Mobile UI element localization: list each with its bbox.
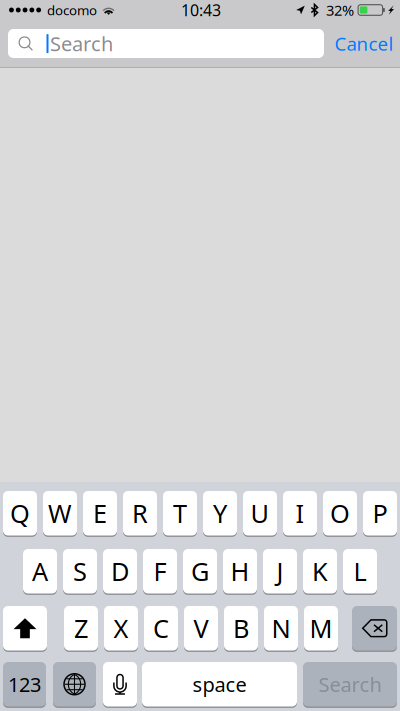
staticText: J bbox=[276, 554, 283, 588]
staticText: A bbox=[32, 554, 48, 588]
staticText: Search bbox=[50, 30, 113, 57]
staticText: H bbox=[230, 554, 249, 588]
staticText: Search bbox=[318, 671, 381, 698]
button[interactable]: B bbox=[224, 606, 258, 652]
button[interactable]: H bbox=[223, 549, 257, 595]
staticText: D bbox=[111, 554, 129, 588]
button[interactable]: Next keyboard bbox=[53, 662, 96, 708]
button[interactable]: J bbox=[263, 549, 297, 595]
button[interactable]: G bbox=[183, 549, 217, 595]
button[interactable]: W bbox=[43, 491, 77, 537]
button[interactable]: Y bbox=[203, 491, 237, 537]
staticText: K bbox=[312, 554, 328, 588]
staticText: L bbox=[353, 554, 366, 588]
button[interactable]: E bbox=[83, 491, 117, 537]
staticText: C bbox=[153, 611, 169, 645]
button[interactable]: Shift bbox=[3, 606, 47, 652]
button[interactable]: A bbox=[23, 549, 57, 595]
button[interactable]: Search bbox=[303, 662, 397, 708]
button[interactable]: N bbox=[264, 606, 298, 652]
staticText: O bbox=[330, 496, 350, 530]
button[interactable]: U bbox=[243, 491, 277, 537]
button[interactable]: Delete bbox=[352, 606, 397, 652]
staticText: T bbox=[173, 496, 187, 530]
staticText: Y bbox=[213, 496, 227, 530]
button[interactable]: Q bbox=[3, 491, 37, 537]
staticText: space bbox=[192, 671, 246, 698]
button[interactable]: F bbox=[143, 549, 177, 595]
button[interactable]: D bbox=[103, 549, 137, 595]
staticText: Z bbox=[74, 611, 88, 645]
button[interactable]: P bbox=[363, 491, 397, 537]
staticText: R bbox=[132, 496, 148, 530]
staticText: 123 bbox=[8, 671, 41, 698]
staticText: F bbox=[153, 554, 166, 588]
staticText: docomo bbox=[47, 1, 97, 19]
button[interactable]: L bbox=[343, 549, 377, 595]
button[interactable]: Cancel bbox=[325, 22, 400, 65]
button[interactable]: Numbers bbox=[3, 662, 46, 708]
staticText: Cancel bbox=[334, 31, 393, 56]
staticText: 32% bbox=[326, 0, 354, 20]
button[interactable]: Z bbox=[64, 606, 98, 652]
staticText: I bbox=[295, 496, 304, 530]
button[interactable]: O bbox=[323, 491, 357, 537]
button[interactable]: I bbox=[283, 491, 317, 537]
staticText: Q bbox=[10, 496, 30, 530]
button[interactable]: K bbox=[303, 549, 337, 595]
button[interactable]: V bbox=[184, 606, 218, 652]
staticText: B bbox=[233, 611, 249, 645]
staticText: 10:43 bbox=[181, 0, 221, 21]
staticText: X bbox=[113, 611, 128, 645]
staticText: P bbox=[372, 496, 387, 530]
staticText: S bbox=[73, 554, 87, 588]
staticText: U bbox=[250, 496, 269, 530]
button[interactable]: S bbox=[63, 549, 97, 595]
button[interactable]: M bbox=[304, 606, 338, 652]
staticText: W bbox=[48, 496, 72, 530]
button[interactable]: C bbox=[144, 606, 178, 652]
button[interactable]: R bbox=[123, 491, 157, 537]
button[interactable]: T bbox=[163, 491, 197, 537]
staticText: V bbox=[193, 611, 208, 645]
staticText: G bbox=[191, 554, 209, 588]
button[interactable]: Search bbox=[8, 29, 324, 58]
staticText: E bbox=[93, 496, 107, 530]
staticText: M bbox=[309, 611, 332, 645]
button[interactable]: space bbox=[142, 662, 297, 708]
button[interactable]: X bbox=[104, 606, 138, 652]
button[interactable]: Dictation bbox=[103, 662, 137, 708]
staticText: N bbox=[271, 611, 290, 645]
